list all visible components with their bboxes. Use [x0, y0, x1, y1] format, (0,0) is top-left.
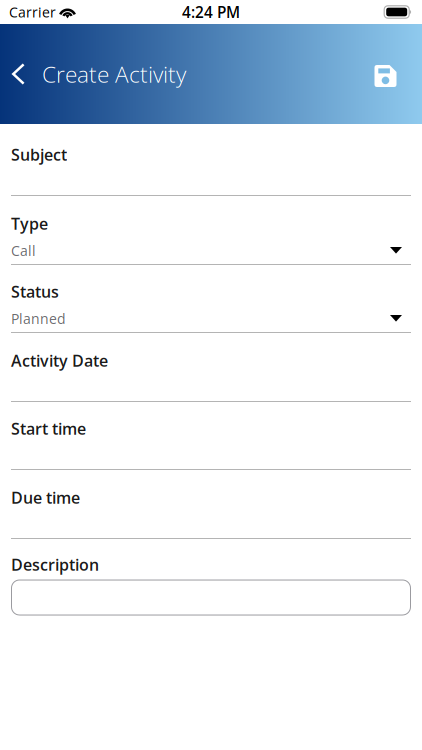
button[interactable]: Back [0, 50, 42, 98]
staticText: Type [11, 213, 48, 234]
staticText: Carrier [9, 2, 56, 22]
staticText: 4:24 PM [182, 2, 240, 22]
staticText: Start time [11, 418, 86, 439]
button[interactable]: Status [0, 265, 422, 333]
staticText: Planned [11, 309, 66, 328]
staticText: Activity Date [11, 350, 108, 371]
button[interactable]: Start time [0, 402, 422, 470]
staticText: Due time [11, 487, 80, 508]
button[interactable]: Activity Date [0, 333, 422, 402]
staticText: Subject [11, 144, 67, 165]
button[interactable]: Subject [0, 124, 422, 196]
staticText: Description [11, 554, 99, 575]
button[interactable]: Due time [0, 470, 422, 539]
button[interactable]: Save [365, 50, 406, 98]
button[interactable]: Description [11, 580, 410, 615]
staticText: Call [11, 241, 36, 260]
button[interactable]: Type [0, 196, 422, 265]
staticText: Status [11, 281, 59, 302]
staticText: Create Activity [42, 59, 186, 89]
